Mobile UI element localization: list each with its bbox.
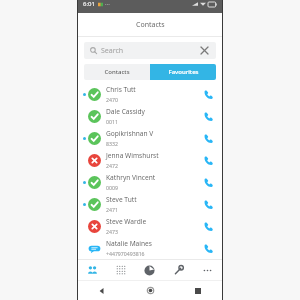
staticText: Kathryn Vincent [106, 173, 156, 182]
button[interactable]: Contacts [78, 260, 106, 280]
button[interactable]: Home [126, 281, 174, 300]
button[interactable]: Call Gopikrishnan V [201, 131, 215, 145]
staticText: Steve Tutt [106, 195, 137, 204]
button[interactable]: Search [84, 42, 216, 59]
button[interactable]: Call Chris Tutt [201, 87, 215, 101]
staticText: Gopikrishnan V [106, 129, 154, 138]
button[interactable]: Gopikrishnan V [78, 127, 222, 149]
button[interactable]: Recent apps [174, 281, 222, 300]
button[interactable]: Recents [135, 260, 164, 280]
staticText: +447970493816 [106, 250, 145, 257]
staticText: 2471 [106, 206, 118, 213]
button[interactable]: Kathryn Vincent [78, 171, 222, 193]
button[interactable]: Favourites [150, 64, 216, 80]
staticText: 8332 [106, 140, 118, 147]
staticText: Search [101, 46, 124, 56]
button[interactable]: Steve Tutt [78, 193, 222, 215]
staticText: Steve Wardle [106, 217, 147, 226]
button[interactable]: Dialpad [106, 260, 135, 280]
button[interactable]: Clear search [199, 45, 210, 56]
button[interactable]: Call Kathryn Vincent [201, 175, 215, 189]
staticText: 6:01 [83, 0, 95, 8]
staticText: 0011 [106, 118, 118, 125]
button[interactable]: Call Jenna Wimshurst [201, 153, 215, 167]
staticText: Contacts [136, 20, 165, 30]
staticText: Contacts [104, 68, 130, 76]
staticText: Chris Tutt [106, 85, 136, 94]
staticText: ··· [105, 0, 110, 8]
button[interactable]: Call Steve Wardle [201, 219, 215, 233]
button[interactable]: Contacts [84, 64, 150, 80]
button[interactable]: Call Steve Tutt [201, 197, 215, 211]
button[interactable]: Dale Cassidy [78, 105, 222, 127]
button[interactable]: Tools [164, 260, 193, 280]
button[interactable]: More options [193, 260, 222, 280]
button[interactable]: Steve Wardle [78, 215, 222, 237]
button[interactable]: Call Dale Cassidy [201, 109, 215, 123]
button[interactable]: Back [78, 281, 126, 300]
staticText: Favourites [168, 68, 199, 76]
button[interactable]: Chris Tutt [78, 83, 222, 105]
staticText: 2473 [106, 228, 118, 235]
staticText: 0009 [106, 184, 118, 191]
staticText: 2470 [106, 96, 118, 103]
staticText: Dale Cassidy [106, 107, 145, 116]
button[interactable]: Natalie Maines [78, 237, 222, 259]
staticText: Natalie Maines [106, 239, 152, 248]
button[interactable]: Jenna Wimshurst [78, 149, 222, 171]
button[interactable]: Call Natalie Maines [201, 241, 215, 255]
staticText: Jenna Wimshurst [106, 151, 159, 160]
staticText: 2472 [106, 162, 118, 169]
